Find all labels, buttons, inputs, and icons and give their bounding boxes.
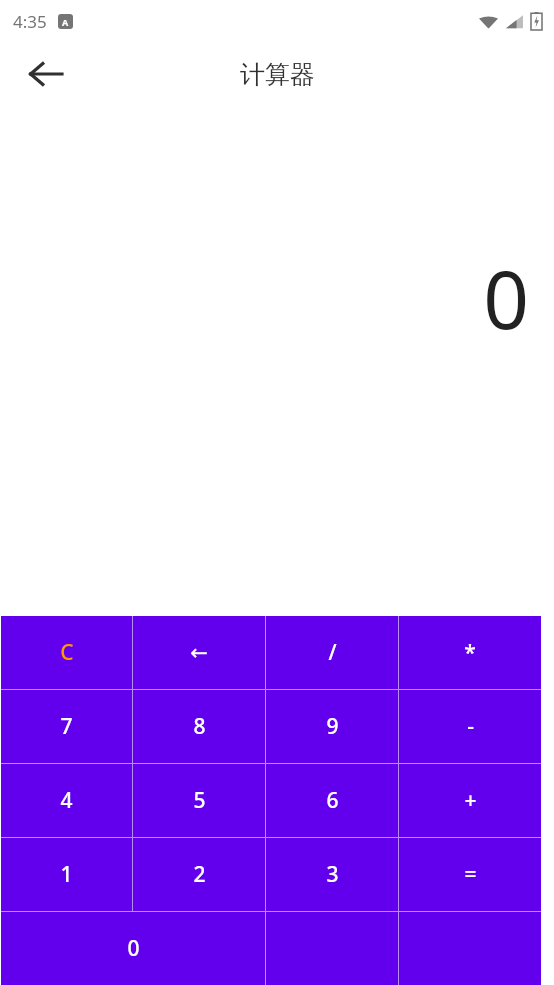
- staticText: +: [464, 786, 477, 815]
- staticText: 8: [193, 712, 206, 741]
- staticText: 5: [193, 786, 206, 815]
- staticText: 9: [326, 712, 339, 741]
- button[interactable]: *: [399, 616, 541, 689]
- button[interactable]: 6: [266, 764, 398, 837]
- staticText: C: [60, 638, 74, 667]
- button[interactable]: 3: [266, 838, 398, 911]
- staticText: 0: [483, 243, 529, 352]
- button[interactable]: 7: [1, 690, 132, 763]
- button[interactable]: 5: [133, 764, 265, 837]
- button[interactable]: ←: [133, 616, 265, 689]
- staticText: *: [464, 638, 476, 667]
- button[interactable]: -: [399, 690, 541, 763]
- staticText: 7: [60, 712, 73, 741]
- button[interactable]: 0: [1, 912, 265, 985]
- button[interactable]: +: [399, 764, 541, 837]
- staticText: 1: [60, 860, 73, 889]
- staticText: 2: [193, 860, 206, 889]
- staticText: 计算器: [240, 59, 315, 90]
- button[interactable]: /: [266, 616, 398, 689]
- button[interactable]: 4: [1, 764, 132, 837]
- button[interactable]: Back: [20, 48, 72, 100]
- button[interactable]: C: [1, 616, 132, 689]
- button[interactable]: =: [399, 838, 541, 911]
- staticText: 0: [127, 934, 140, 963]
- button[interactable]: 8: [133, 690, 265, 763]
- staticText: -: [467, 712, 474, 741]
- staticText: 4: [60, 786, 73, 815]
- button[interactable]: 2: [133, 838, 265, 911]
- staticText: ←: [190, 641, 208, 665]
- staticText: 4:35: [13, 10, 47, 33]
- staticText: =: [464, 860, 477, 889]
- button[interactable]: 9: [266, 690, 398, 763]
- staticText: /: [328, 638, 337, 667]
- staticText: A: [62, 16, 69, 28]
- staticText: 6: [326, 786, 339, 815]
- staticText: 3: [326, 860, 339, 889]
- button[interactable]: 1: [1, 838, 132, 911]
